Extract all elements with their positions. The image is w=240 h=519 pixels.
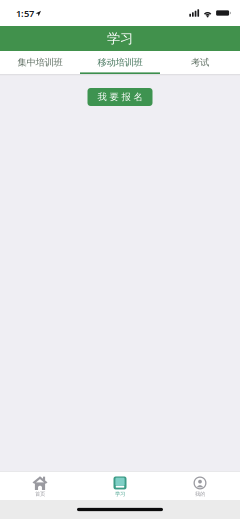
button[interactable]: 集中培训班 (0, 51, 80, 74)
staticText: 集中培训班 (17, 57, 62, 68)
button[interactable]: 我 要 报 名 (87, 88, 152, 106)
staticText: 我 要 报 名 (97, 91, 142, 103)
staticText: 学习 (107, 30, 133, 47)
staticText: 我的 (195, 491, 205, 497)
staticText: 移动培训班 (97, 57, 142, 68)
button[interactable]: 首页 (0, 471, 80, 500)
staticText: 考试 (191, 57, 209, 68)
button[interactable]: 移动培训班 (80, 51, 160, 74)
staticText: 1:57 (16, 7, 34, 20)
button[interactable]: 学习 (80, 471, 160, 500)
button[interactable]: 考试 (160, 51, 240, 74)
staticText: 学习 (115, 491, 125, 497)
staticText: 首页 (35, 491, 45, 497)
button[interactable]: 我的 (160, 471, 240, 500)
